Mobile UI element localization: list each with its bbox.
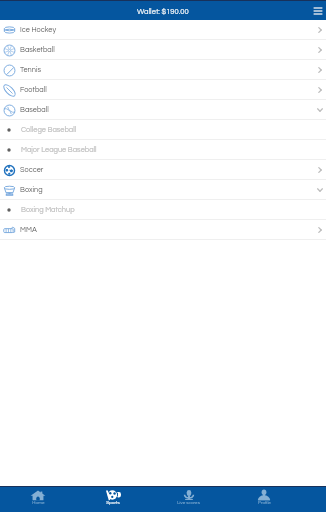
button[interactable]: Menu (309, 1, 326, 20)
button[interactable]: College Baseball (0, 120, 326, 140)
staticText: Boxing Matchup (21, 206, 75, 214)
button[interactable]: Tennis (0, 60, 326, 80)
staticText: College Baseball (21, 126, 77, 134)
button[interactable]: Football (0, 80, 326, 100)
staticText: Home (32, 500, 45, 505)
staticText: Football (20, 86, 47, 94)
staticText: Live scores (177, 500, 200, 505)
button[interactable]: Boxing Matchup (0, 200, 326, 220)
button[interactable]: MMA (0, 220, 326, 240)
button[interactable]: Basketball (0, 40, 326, 60)
button[interactable]: Boxing (0, 180, 326, 200)
button[interactable]: Profile (226, 487, 302, 512)
staticText: Soccer (20, 166, 44, 174)
button[interactable]: Home (0, 487, 75, 512)
button[interactable]: Sports (75, 487, 150, 512)
staticText: Ice Hockey (20, 26, 57, 34)
button[interactable]: Soccer (0, 160, 326, 180)
staticText: Basketball (20, 46, 55, 54)
button[interactable]: Major League Baseball (0, 140, 326, 160)
button[interactable]: Live scores (150, 487, 226, 512)
staticText: Major League Baseball (21, 146, 97, 154)
staticText: Sports (106, 500, 120, 505)
staticText: MMA (20, 226, 37, 234)
button[interactable]: Ice Hockey (0, 20, 326, 40)
staticText: Boxing (20, 186, 43, 194)
staticText: Wallet: $190.00 (137, 8, 189, 16)
staticText: Profile (258, 500, 271, 505)
staticText: Tennis (20, 66, 42, 74)
button[interactable]: Baseball (0, 100, 326, 120)
staticText: Baseball (20, 106, 49, 114)
